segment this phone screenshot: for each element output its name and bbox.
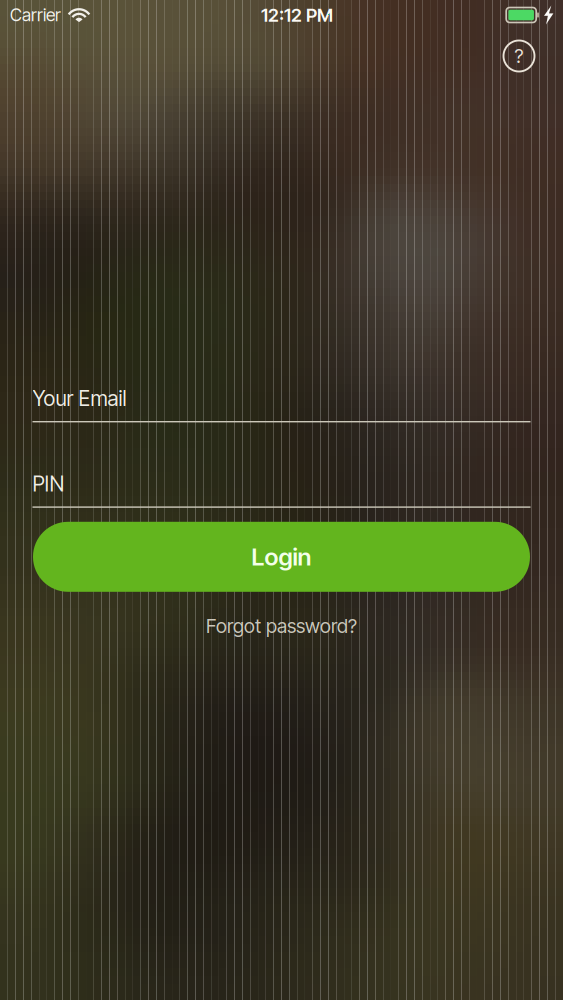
staticText: 12:12 PM xyxy=(261,4,333,26)
staticText: Login xyxy=(251,542,311,571)
button[interactable]: Help xyxy=(497,34,541,78)
button[interactable]: Forgot password? xyxy=(206,615,357,637)
button[interactable]: Login xyxy=(33,522,530,592)
staticText: Your Email xyxy=(32,386,126,411)
staticText: PIN xyxy=(32,471,64,496)
staticText: Carrier xyxy=(10,4,61,25)
staticText: Forgot password? xyxy=(206,614,357,638)
staticText: ? xyxy=(514,44,523,68)
button[interactable]: PIN xyxy=(32,469,530,508)
button[interactable]: Your Email xyxy=(32,384,530,422)
